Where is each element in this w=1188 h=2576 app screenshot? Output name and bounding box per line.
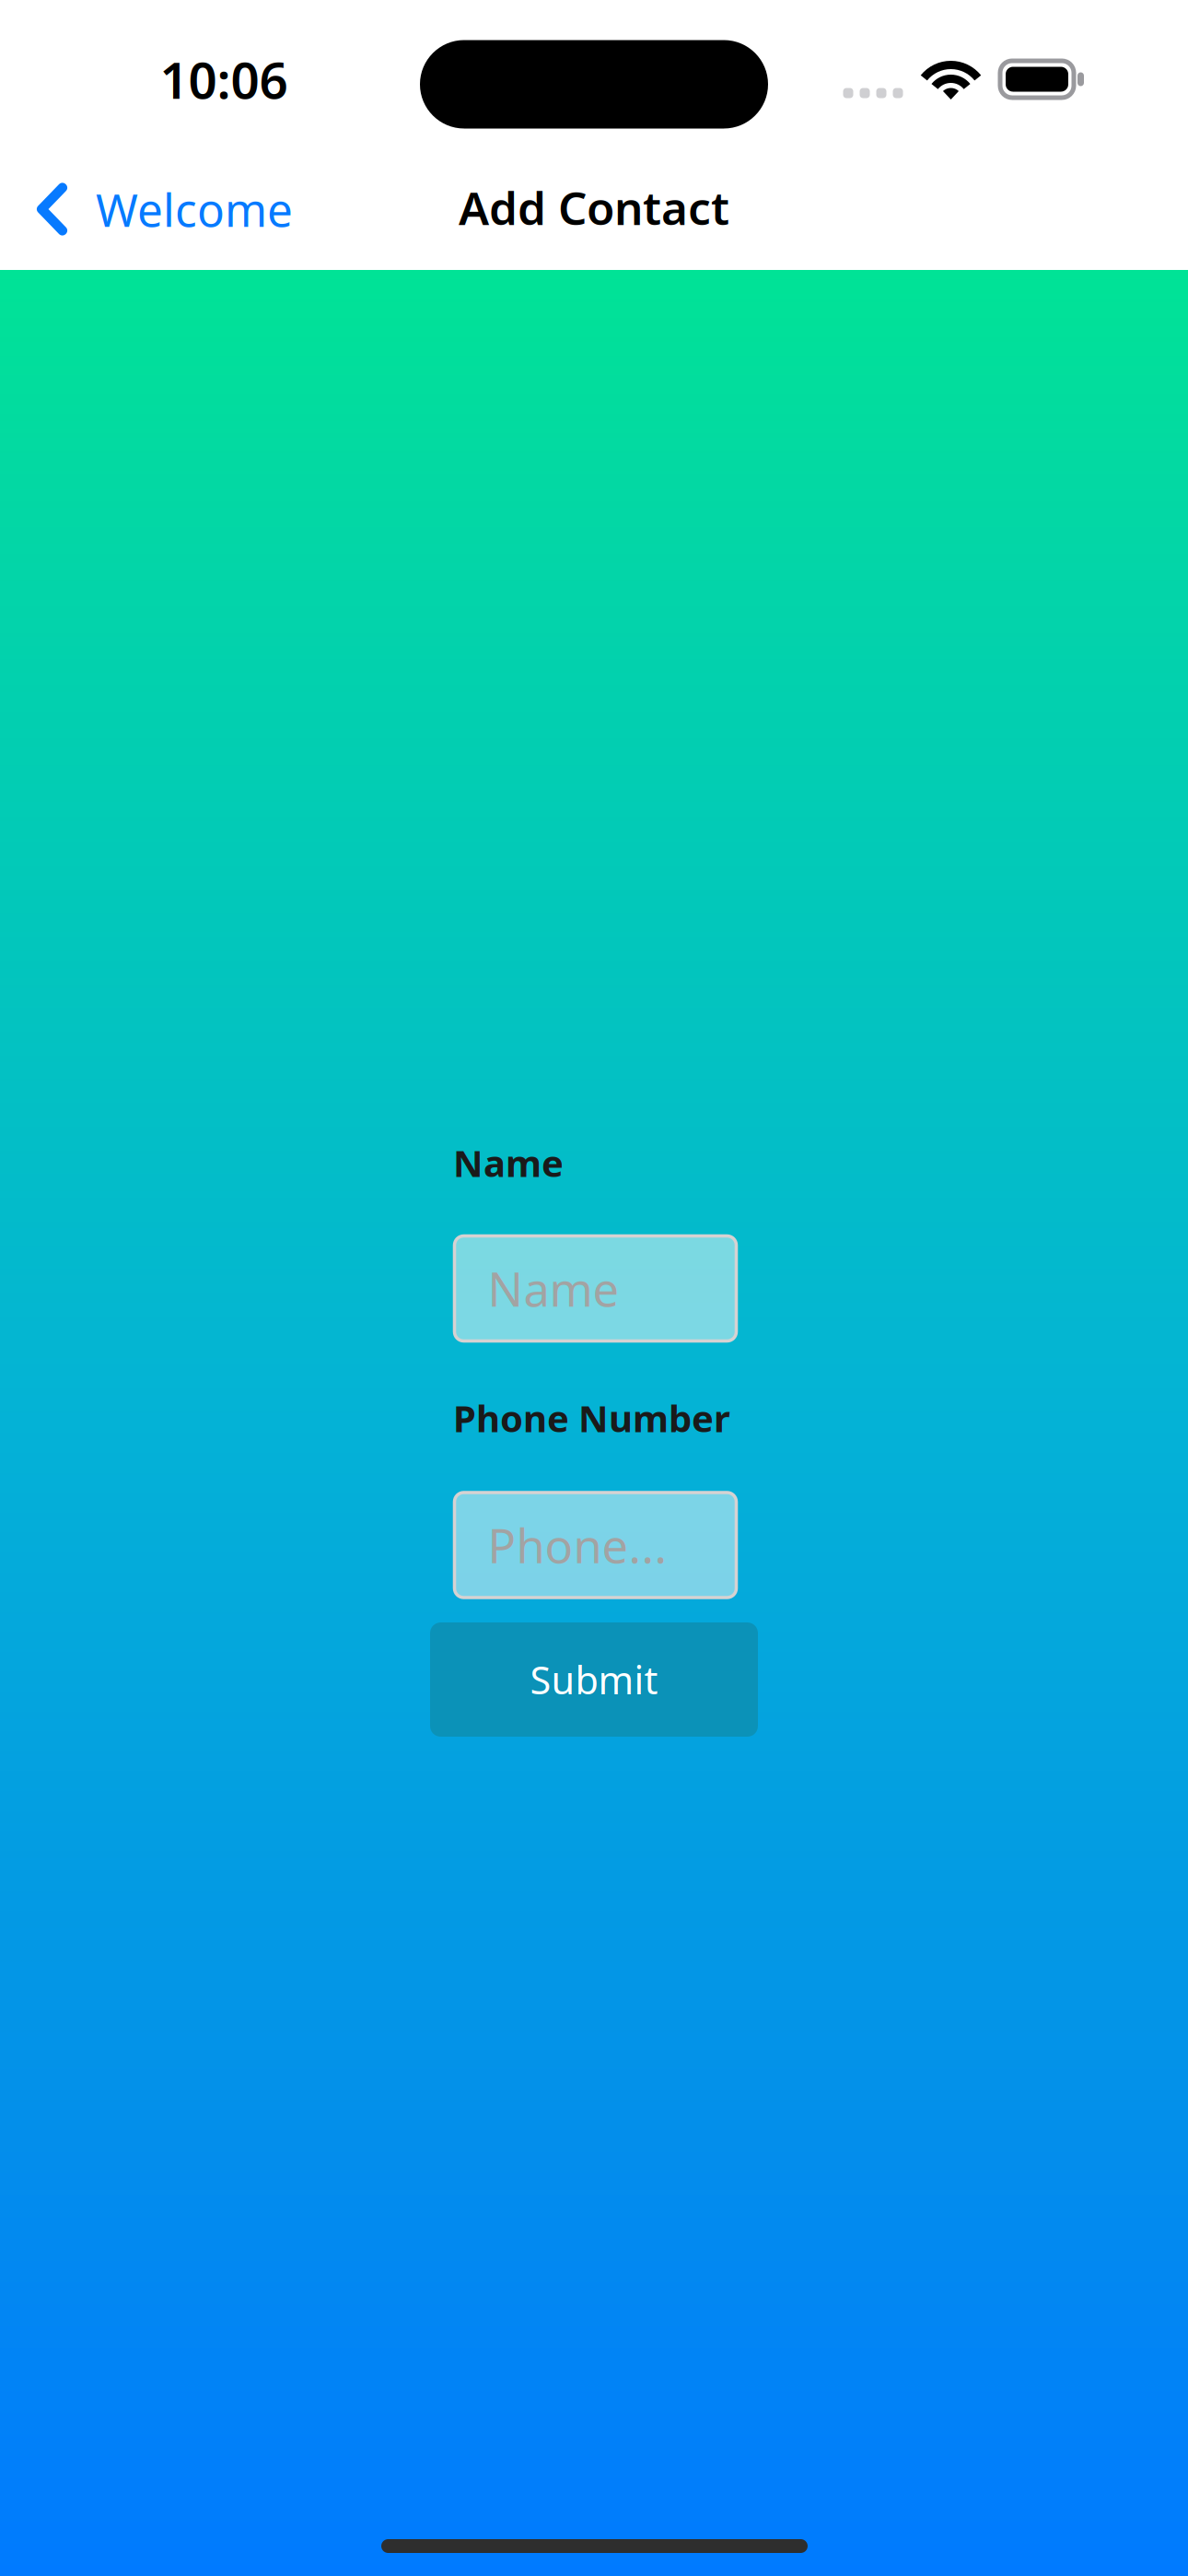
button[interactable]: Back to Welcome [0, 158, 350, 260]
staticText: Add Contact [459, 177, 729, 237]
button[interactable]: Submit [430, 1622, 758, 1737]
staticText: Name [488, 1258, 619, 1320]
staticText: 10:06 [160, 46, 288, 113]
staticText: Phone... [488, 1514, 667, 1576]
staticText: Welcome [96, 179, 293, 239]
button[interactable]: Name [454, 1236, 736, 1341]
staticText: Submit [530, 1654, 658, 1705]
staticText: Name [453, 1138, 564, 1187]
staticText: Phone Number [453, 1393, 730, 1442]
button[interactable]: Phone... [454, 1493, 736, 1598]
